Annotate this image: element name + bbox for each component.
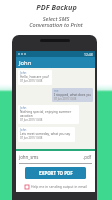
staticText: PDF Backup — [36, 2, 77, 12]
button[interactable]: EXPORT TO PDF — [25, 167, 86, 179]
button[interactable]: Help me in sending output in email — [25, 184, 87, 189]
staticText: 12:48 — [84, 52, 93, 57]
staticText: I stopped, what does you — [54, 93, 91, 97]
staticText: john_sms — [19, 154, 39, 160]
staticText: 07 Jun 2015 13:08 — [20, 136, 43, 140]
staticText: 07 Jun 2015 13:08 — [20, 79, 43, 83]
staticText: Nothing special, enjoying summer vacatio… — [20, 110, 72, 118]
button[interactable]: me — [52, 88, 93, 102]
staticText: EXPORT TO PDF — [39, 170, 73, 176]
staticText: Lets meet someday, what you say — [20, 132, 71, 136]
button[interactable]: John — [16, 57, 95, 68]
button[interactable]: John — [18, 127, 75, 142]
staticText: John — [20, 128, 27, 132]
staticText: Select SMS Conversation to Print — [29, 15, 83, 29]
staticText: me — [54, 89, 59, 93]
staticText: John — [19, 59, 32, 67]
staticText: 07 Jun 2015 13:08 — [54, 97, 77, 101]
staticText: Help me in sending output in email — [31, 184, 87, 189]
staticText: Hello, how are you? — [20, 75, 50, 79]
button[interactable]: John — [18, 105, 79, 124]
staticText: .pdf — [83, 154, 92, 160]
staticText: John — [20, 71, 27, 75]
button[interactable]: John — [18, 70, 52, 85]
staticText: 07 Jun 2015 13:08 — [20, 118, 43, 122]
staticText: John — [20, 106, 27, 110]
